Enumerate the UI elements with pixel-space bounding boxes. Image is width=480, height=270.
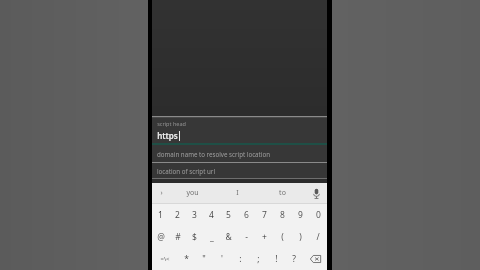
staticText: ( <box>281 231 284 243</box>
button[interactable]: 2 <box>169 204 186 226</box>
button[interactable]: * <box>177 248 195 270</box>
staticText: ! <box>275 253 278 265</box>
staticText: / <box>316 231 320 243</box>
staticText: ? <box>292 253 296 265</box>
button[interactable]: 0 <box>309 204 327 226</box>
button[interactable]: Voice input <box>305 183 327 203</box>
button[interactable]: 1 <box>152 204 169 226</box>
button[interactable]: @ <box>152 226 169 248</box>
button[interactable]: + <box>255 226 273 248</box>
button[interactable]: to <box>260 183 305 203</box>
button[interactable]: " <box>195 248 213 270</box>
staticText: ; <box>257 253 260 265</box>
staticText: + <box>262 231 267 243</box>
button[interactable]: =\< <box>152 248 177 270</box>
staticText: you <box>186 188 199 198</box>
button[interactable]: 7 <box>255 204 273 226</box>
staticText: to <box>279 188 286 198</box>
button[interactable]: & <box>220 226 237 248</box>
button[interactable]: ! <box>267 248 285 270</box>
staticText: 1 <box>158 209 163 221</box>
button[interactable]: $ <box>186 226 203 248</box>
staticText: # <box>175 231 181 243</box>
button[interactable]: # <box>169 226 186 248</box>
staticText: › <box>160 188 163 198</box>
staticText: script head <box>157 120 186 127</box>
staticText: * <box>184 253 189 265</box>
button[interactable]: / <box>309 226 327 248</box>
button[interactable]: ' <box>213 248 231 270</box>
button[interactable]: 5 <box>220 204 237 226</box>
button[interactable]: : <box>231 248 249 270</box>
staticText: 6 <box>244 209 249 221</box>
button[interactable]: 8 <box>273 204 291 226</box>
staticText: =\< <box>160 255 170 263</box>
button[interactable]: ; <box>249 248 267 270</box>
staticText: & <box>225 231 232 243</box>
button[interactable]: 9 <box>291 204 309 226</box>
button[interactable]: - <box>237 226 255 248</box>
button[interactable]: ( <box>273 226 291 248</box>
button[interactable]: Backspace <box>303 248 327 270</box>
staticText: location of script url <box>157 167 215 175</box>
button[interactable]: domain name to resolve script location <box>152 146 327 162</box>
staticText: 4 <box>209 209 214 221</box>
staticText: 5 <box>226 209 231 221</box>
button[interactable]: 6 <box>237 204 255 226</box>
button[interactable]: you <box>170 183 215 203</box>
button[interactable]: _ <box>203 226 220 248</box>
staticText: @ <box>157 231 165 243</box>
button[interactable]: I <box>215 183 260 203</box>
staticText: 7 <box>262 209 267 221</box>
button[interactable]: ) <box>291 226 309 248</box>
button[interactable]: location of script url <box>152 163 327 178</box>
staticText: I <box>236 188 239 198</box>
staticText: domain name to resolve script location <box>157 150 270 158</box>
staticText: 0 <box>316 209 321 221</box>
button[interactable]: 4 <box>203 204 220 226</box>
staticText: $ <box>192 231 197 243</box>
button[interactable]: 3 <box>186 204 203 226</box>
staticText: 8 <box>280 209 285 221</box>
staticText: _ <box>210 231 214 243</box>
button[interactable]: script head <box>152 118 327 146</box>
staticText: https <box>157 130 178 141</box>
staticText: : <box>239 253 242 265</box>
staticText: ' <box>221 253 223 265</box>
staticText: - <box>245 231 248 243</box>
staticText: ) <box>299 231 302 243</box>
staticText: 9 <box>298 209 303 221</box>
staticText: 3 <box>192 209 197 221</box>
staticText: " <box>202 253 206 265</box>
staticText: 2 <box>175 209 180 221</box>
button[interactable]: › <box>152 183 170 203</box>
button[interactable]: ? <box>285 248 303 270</box>
